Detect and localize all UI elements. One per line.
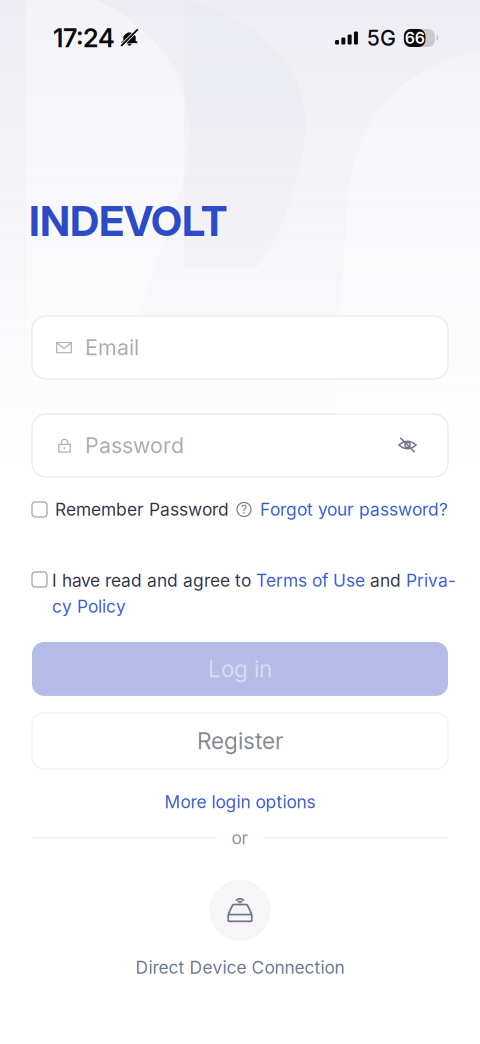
button[interactable]: Register <box>32 713 448 769</box>
staticText: 17:24 <box>53 23 115 53</box>
staticText: 5G <box>367 25 396 51</box>
staticText: Remember Password <box>55 499 229 520</box>
staticText: Terms of Use <box>256 570 365 591</box>
staticText: More login options <box>164 791 315 812</box>
staticText: INDEVOLT <box>29 196 227 246</box>
staticText: ? <box>241 502 247 517</box>
staticText: Direct Device Connection <box>135 957 344 978</box>
staticText: or <box>231 827 248 848</box>
button[interactable]: Log in <box>32 642 448 696</box>
staticText: and <box>365 570 406 591</box>
button[interactable]: Remember Password <box>32 499 251 520</box>
button[interactable]: More login options <box>0 791 480 813</box>
button[interactable]: Forgot your password? <box>260 499 448 520</box>
staticText: Log in <box>208 655 272 683</box>
button[interactable]: Direct Device Connection <box>209 880 270 941</box>
staticText: cy Policy <box>52 596 126 617</box>
staticText: Forgot your password? <box>260 499 448 520</box>
staticText: 66 <box>405 28 425 48</box>
staticText: Email <box>85 335 139 360</box>
staticText: Register <box>197 727 283 755</box>
staticText: I have read and agree to <box>52 570 256 591</box>
staticText: Priva- <box>406 570 456 591</box>
staticText: Password <box>85 433 184 458</box>
